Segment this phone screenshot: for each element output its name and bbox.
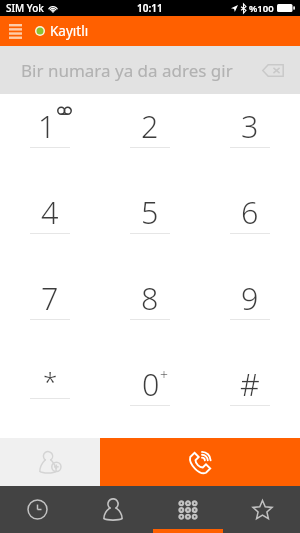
button[interactable]: # [200,352,300,438]
button[interactable]: Contacts [75,486,150,533]
button[interactable]: 1 [0,94,100,180]
button[interactable]: 7 [0,266,100,352]
staticText: SIM Yok [6,1,44,15]
staticText: 10:11 [137,1,163,15]
staticText: 1 [38,105,56,147]
button[interactable]: 5 [100,180,200,266]
button[interactable]: Recents [0,486,75,533]
button[interactable]: * [0,352,100,438]
button[interactable]: Call [100,438,300,486]
button[interactable]: 0 [100,352,200,438]
button[interactable]: Bir numara ya da adres gir [0,46,300,94]
button[interactable]: 6 [200,180,300,266]
staticText: + [160,365,168,384]
button[interactable]: Backspace [259,60,287,80]
staticText: 2 [141,105,159,147]
button[interactable]: Add contact [0,438,100,486]
staticText: # [240,363,260,405]
staticText: 8 [141,277,159,319]
button[interactable]: Favorites [225,486,300,533]
button[interactable]: 8 [100,266,200,352]
button[interactable]: 9 [200,266,300,352]
staticText: 9 [241,277,259,319]
button[interactable]: 2 [100,94,200,180]
staticText: 3 [241,105,259,147]
staticText: 7 [41,277,59,319]
button[interactable]: Menu [0,16,31,46]
staticText: * [43,363,58,398]
button[interactable]: 3 [200,94,300,180]
staticText: Bir numara ya da adres gir [21,59,233,82]
staticText: 5 [141,191,159,233]
button[interactable]: 4 [0,180,100,266]
staticText: 0 [142,363,160,405]
staticText: 6 [241,191,259,233]
staticText: Kayıtlı [50,22,89,40]
button[interactable]: Keypad [150,486,225,533]
staticText: 4 [41,191,59,233]
staticText: %100 [249,2,274,15]
